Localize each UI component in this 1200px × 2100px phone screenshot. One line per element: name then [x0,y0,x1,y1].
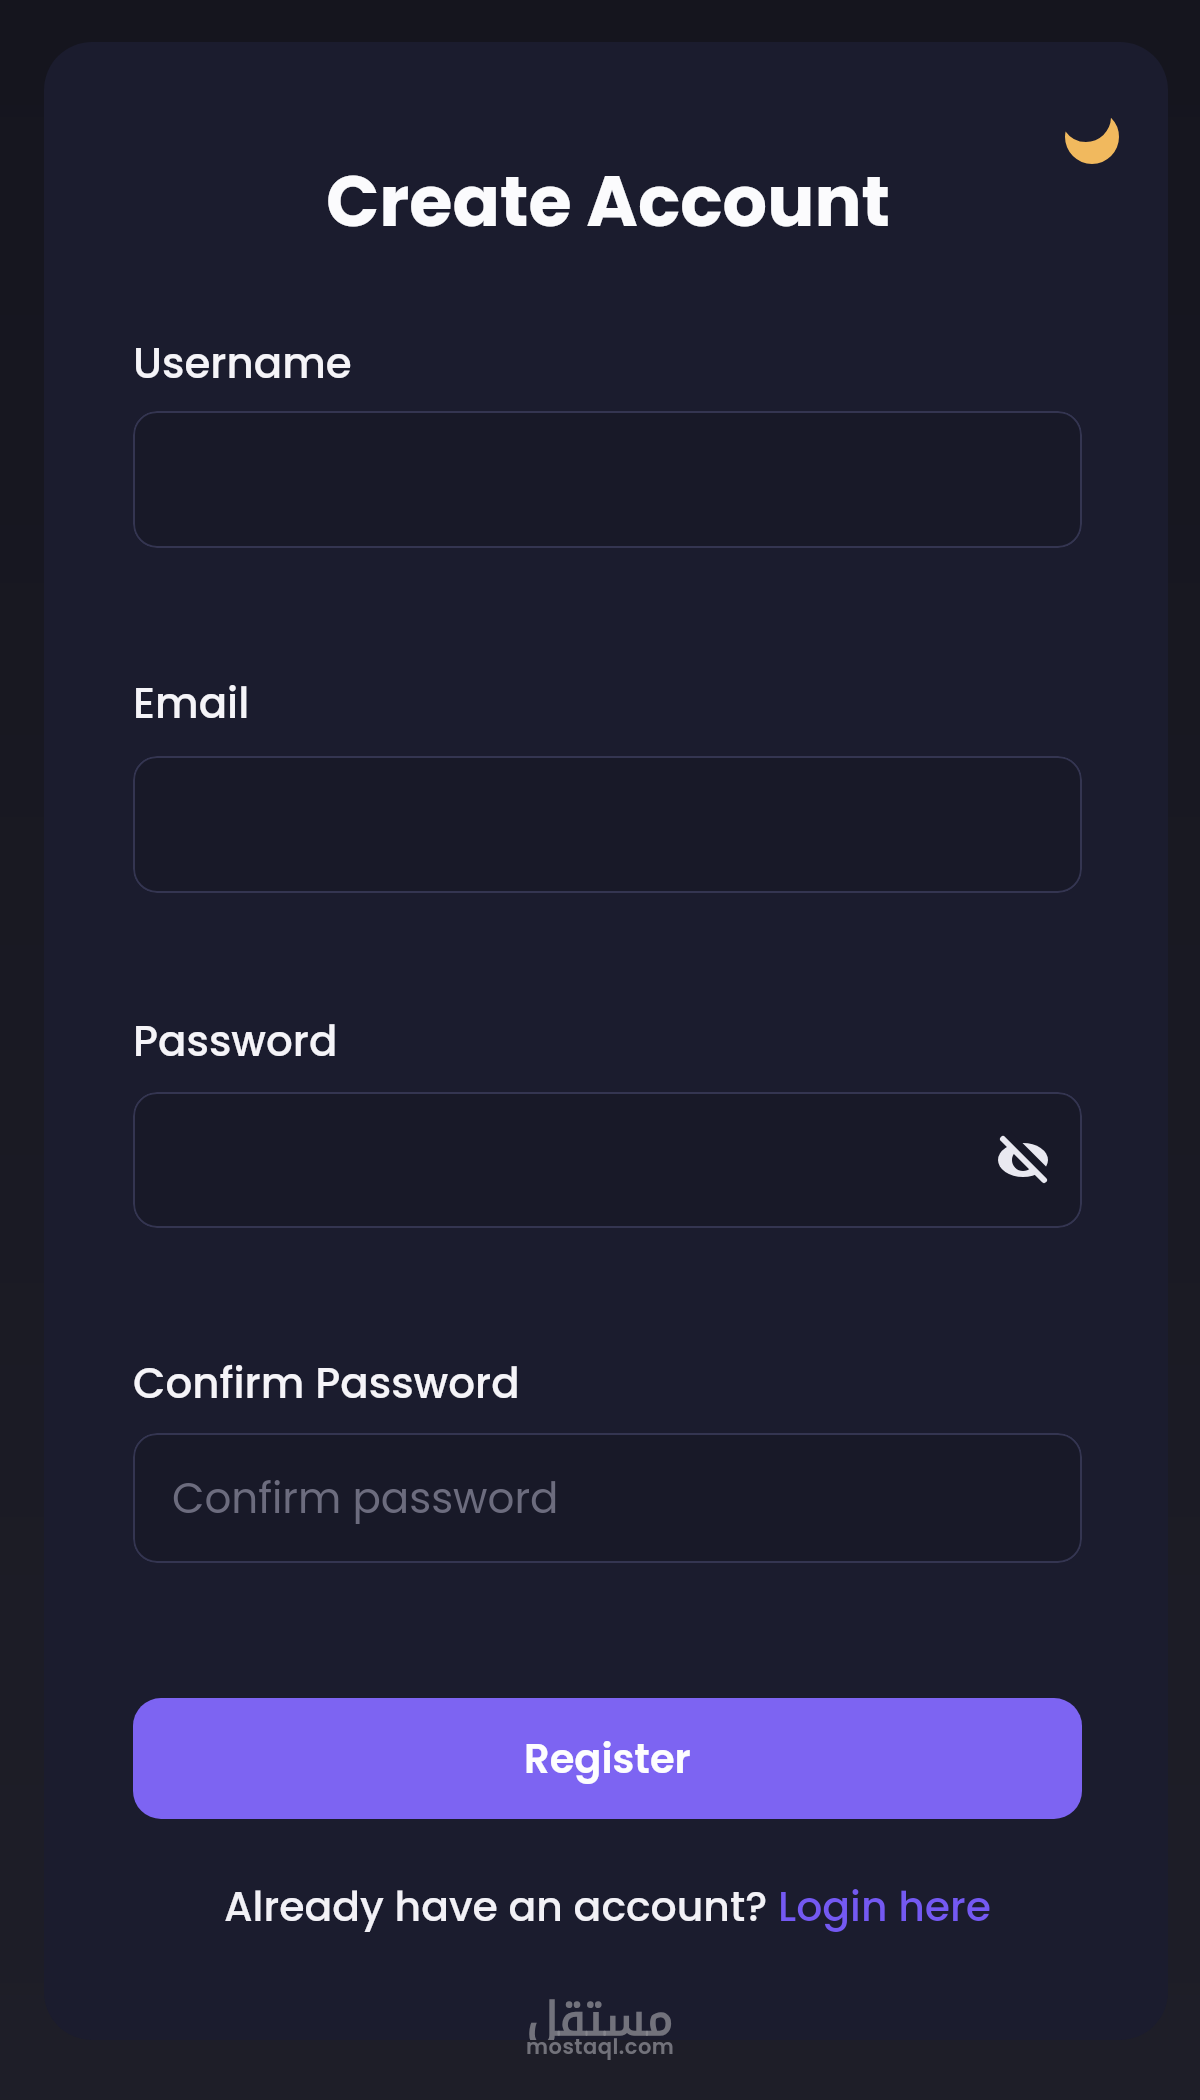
staticText: mostaql.com [526,2032,675,2061]
button[interactable] [995,1137,1051,1183]
button[interactable] [133,1092,1082,1228]
button[interactable]: Already have an account? Login here [133,1876,1082,1936]
staticText: Username [133,334,352,393]
button[interactable] [133,756,1082,893]
staticText: Register [524,1731,691,1787]
staticText: مستقل [527,1976,674,2040]
button[interactable]: Confirm password [133,1433,1082,1563]
button[interactable]: Register [133,1698,1082,1819]
button[interactable] [1059,108,1125,164]
staticText: Email [133,674,250,733]
button[interactable] [133,411,1082,548]
staticText: Password [133,1012,338,1071]
staticText: Already have an account? Login here [224,1878,992,1935]
staticText: Confirm password [172,1469,559,1528]
staticText: Create Account [326,152,890,250]
staticText: Confirm Password [133,1354,520,1413]
